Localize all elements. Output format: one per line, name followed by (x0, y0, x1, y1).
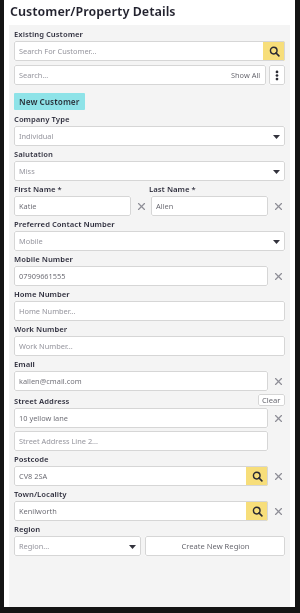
staticText: Work Number (14, 324, 68, 334)
button[interactable]: Home Number... (14, 301, 285, 321)
staticText: Work Number... (19, 341, 73, 351)
button[interactable]: Clear first name (134, 199, 148, 213)
button[interactable]: Clear Email (271, 374, 285, 388)
staticText: Last Name * (149, 184, 285, 194)
button[interactable]: 10 yellow lane (14, 408, 268, 428)
staticText: Miss (19, 166, 35, 176)
button[interactable]: Miss (14, 161, 285, 181)
button[interactable]: Clear (258, 394, 285, 406)
button[interactable]: Search Town/Locality (246, 501, 268, 521)
button[interactable]: Allen (151, 196, 268, 216)
staticText: Existing Customer (14, 29, 83, 39)
staticText: Home Number... (19, 306, 76, 316)
button[interactable]: Street Address Line 2... (14, 431, 268, 451)
staticText: Region... (19, 541, 50, 551)
button[interactable]: Clear Mobile Number (271, 269, 285, 283)
button[interactable]: Create New Region (145, 536, 285, 556)
button[interactable]: CV8 2SA (14, 466, 246, 486)
staticText: Company Type (14, 114, 70, 124)
staticText: Clear (262, 395, 281, 405)
staticText: 07909661555 (19, 271, 66, 281)
staticText: Home Number (14, 289, 70, 299)
staticText: Katie (19, 201, 37, 211)
staticText: Town/Locality (14, 489, 67, 499)
button[interactable]: More options (269, 65, 285, 85)
staticText: First Name * (14, 184, 149, 194)
staticText: kallen@cmail.com (19, 376, 82, 386)
button[interactable]: Clear Postcode (271, 469, 285, 483)
staticText: Region (14, 524, 41, 534)
button[interactable]: Search For Customer... (14, 41, 263, 61)
button[interactable]: Individual (14, 126, 285, 146)
button[interactable]: Katie (14, 196, 131, 216)
staticText: Postcode (14, 454, 49, 464)
staticText: Allen (156, 201, 174, 211)
staticText: Show All (231, 70, 261, 80)
button[interactable]: Region... (14, 536, 141, 556)
button[interactable]: Search for customer (263, 41, 285, 61)
button[interactable]: Clear Town/Locality (271, 504, 285, 518)
button[interactable]: Clear street address (271, 411, 285, 425)
button[interactable]: Clear last name (271, 199, 285, 213)
staticText: Create New Region (181, 541, 250, 551)
button[interactable]: Work Number... (14, 336, 285, 356)
staticText: Preferred Contact Number (14, 219, 115, 229)
staticText: CV8 2SA (19, 471, 48, 481)
staticText: Search For Customer... (19, 46, 97, 56)
button[interactable]: Kenilworth (14, 501, 246, 521)
staticText: Street Address (14, 396, 258, 406)
staticText: Search... (19, 70, 49, 80)
staticText: Individual (19, 131, 54, 141)
button[interactable]: kallen@cmail.com (14, 371, 268, 391)
button[interactable]: Mobile (14, 231, 285, 251)
button[interactable]: 07909661555 (14, 266, 268, 286)
button[interactable]: New Customer (14, 93, 85, 110)
staticText: Salutation (14, 149, 54, 159)
staticText: Mobile Number (14, 254, 73, 264)
staticText: Email (14, 359, 35, 369)
button[interactable]: Search... (14, 65, 266, 85)
staticText: Kenilworth (19, 506, 57, 516)
staticText: Customer/Property Details (10, 3, 176, 20)
button[interactable]: Search Postcode (246, 466, 268, 486)
staticText: New Customer (19, 96, 80, 107)
staticText: Street Address Line 2... (19, 436, 99, 446)
staticText: 10 yellow lane (19, 413, 68, 423)
staticText: Mobile (19, 236, 43, 246)
